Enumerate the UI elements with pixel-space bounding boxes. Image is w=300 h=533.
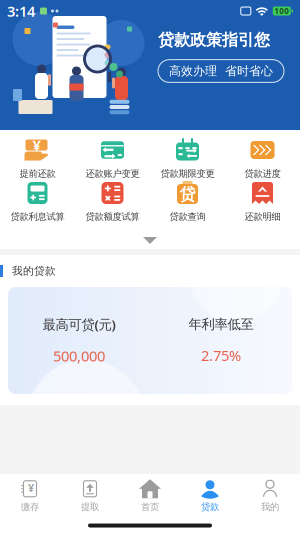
button[interactable]: 展开更多 [123, 237, 177, 249]
button[interactable]: 贷款进度 [225, 139, 300, 181]
staticText: 贷款进度 [244, 168, 280, 179]
staticText: 最高可贷(元) [42, 315, 115, 333]
button[interactable]: 贷款额度试算 [75, 182, 150, 224]
staticText: 贷款政策指引您 [158, 30, 270, 50]
button[interactable]: 贷款利息试算 [0, 182, 75, 224]
staticText: 3:14 [7, 1, 35, 21]
staticText: 首页 [141, 501, 159, 513]
staticText: 提取 [81, 501, 99, 513]
staticText: 我的 [261, 501, 279, 513]
button[interactable]: ¥ [0, 475, 60, 517]
staticText: 提前还款 [19, 168, 55, 179]
staticText: 100 [274, 6, 289, 16]
staticText: 还款明细 [244, 211, 280, 222]
staticText: 2.75% [201, 345, 241, 365]
button[interactable]: 贷款 [180, 475, 240, 517]
staticText: 还款账户变更 [85, 168, 139, 179]
button[interactable]: 首页 [120, 475, 180, 517]
staticText: 贷 [179, 185, 195, 204]
staticText: 贷款 [201, 501, 219, 513]
staticText: 贷款查询 [169, 211, 205, 222]
staticText: 贷款利息试算 [10, 211, 64, 222]
button[interactable]: 高效办理 省时省心 [158, 60, 284, 82]
staticText: 贷款期限变更 [160, 168, 214, 179]
staticText: 年利率低至 [188, 316, 253, 332]
staticText: 500,000 [53, 346, 105, 366]
button[interactable]: 我的 [240, 475, 300, 517]
button[interactable]: 贷 [150, 182, 225, 224]
button[interactable]: 还款明细 [225, 182, 300, 224]
staticText: ¥ [32, 135, 40, 155]
staticText: 贷款额度试算 [85, 211, 139, 222]
staticText: ¥ [28, 481, 34, 495]
staticText: 缴存 [21, 501, 39, 513]
button[interactable]: ¥ [0, 139, 75, 181]
button[interactable]: 贷款期限变更 [150, 139, 225, 181]
button[interactable]: 还款账户变更 [75, 139, 150, 181]
staticText: 我的贷款 [12, 264, 56, 277]
staticText: 高效办理 省时省心 [169, 64, 273, 78]
button[interactable]: 提取 [60, 475, 120, 517]
